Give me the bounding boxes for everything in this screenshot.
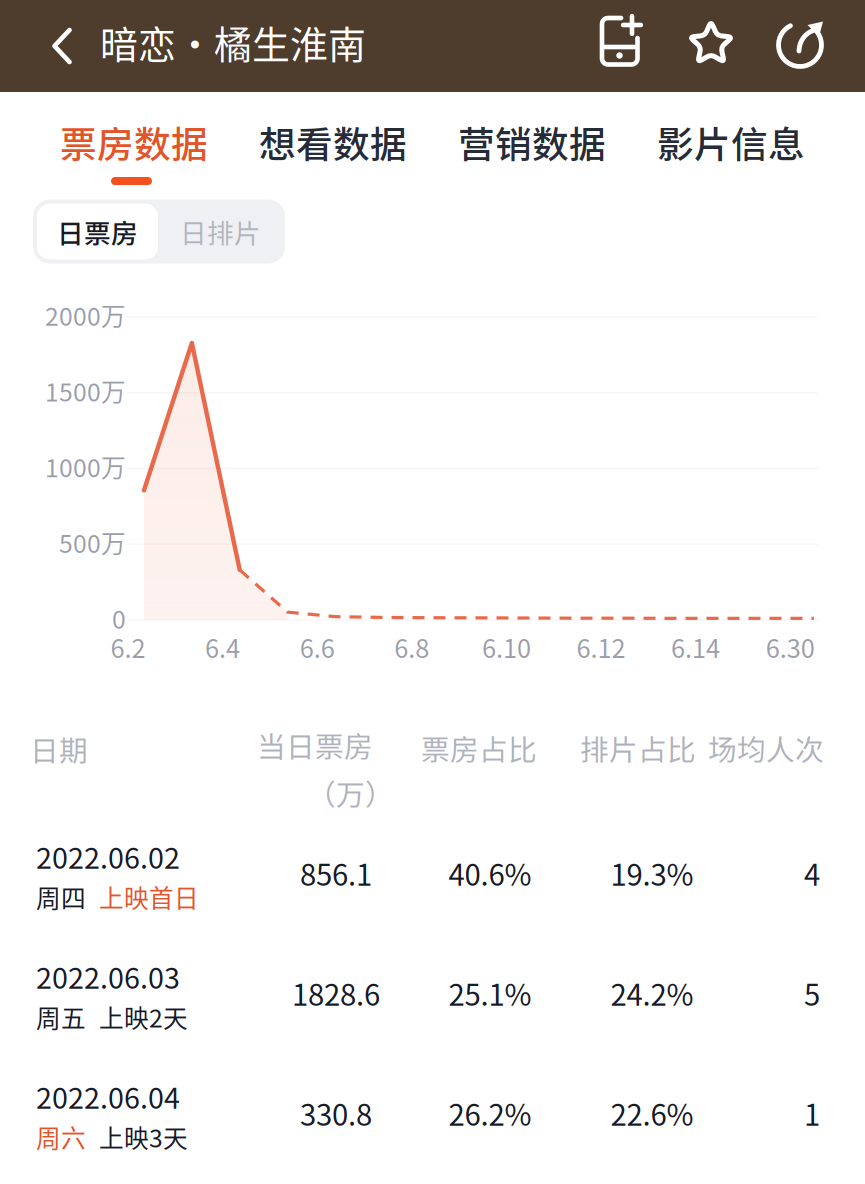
button[interactable]: 分享 <box>763 0 841 88</box>
staticText: 1828.6 <box>292 972 380 1014</box>
staticText: 40.6% <box>448 852 531 894</box>
staticText: 25.1% <box>448 972 531 1014</box>
staticText: 票房占比 <box>421 727 537 769</box>
staticText: 6.8 <box>394 629 429 665</box>
button[interactable]: 收藏 <box>672 0 750 88</box>
staticText: 暗恋·橘生淮南 <box>100 15 366 69</box>
staticText: 6.6 <box>300 629 335 665</box>
staticText: 22.6% <box>610 1092 693 1134</box>
button[interactable]: 加入想看 <box>581 0 659 88</box>
staticText: 2022.06.03 <box>36 955 180 997</box>
staticText: 2022.06.02 <box>36 835 180 877</box>
staticText: 场均人次 <box>708 727 824 769</box>
staticText: 6.2 <box>110 629 145 665</box>
button[interactable]: 日票房 <box>37 203 158 259</box>
staticText: 1000万 <box>45 449 126 484</box>
button[interactable]: 日排片 <box>160 203 281 259</box>
staticText: 2022.06.04 <box>36 1075 180 1117</box>
staticText: 4 <box>804 852 820 894</box>
staticText: 2000万 <box>45 297 126 333</box>
button[interactable]: 影片信息 <box>632 110 830 194</box>
staticText: 19.3% <box>610 852 693 894</box>
staticText: 1 <box>804 1092 820 1134</box>
staticText: 日排片 <box>180 212 261 251</box>
staticText: 当日票房 <box>257 724 373 766</box>
staticText: 6.12 <box>576 629 625 665</box>
button[interactable]: 营销数据 <box>433 110 631 194</box>
staticText: 排片占比 <box>580 727 696 769</box>
staticText: 856.1 <box>300 852 372 894</box>
staticText: 周五 <box>36 999 86 1035</box>
staticText: 6.10 <box>482 629 531 665</box>
staticText: 营销数据 <box>458 115 606 169</box>
staticText: 1500万 <box>45 373 126 409</box>
staticText: 6.30 <box>766 629 815 665</box>
staticText: 6.14 <box>671 629 720 665</box>
staticText: 5 <box>804 972 820 1014</box>
staticText: 330.8 <box>300 1092 372 1134</box>
button[interactable]: 想看数据 <box>234 110 432 194</box>
staticText: 日期 <box>30 728 88 770</box>
staticText: 500万 <box>59 524 126 560</box>
staticText: 票房数据 <box>60 115 208 169</box>
staticText: 日票房 <box>57 212 138 251</box>
staticText: 上映3天 <box>99 1119 188 1155</box>
staticText: 26.2% <box>448 1092 531 1134</box>
staticText: 0 <box>112 600 126 636</box>
staticText: 周六 <box>36 1119 86 1155</box>
staticText: 周四 <box>36 879 86 915</box>
staticText: 上映2天 <box>99 999 188 1035</box>
staticText: 想看数据 <box>259 115 407 169</box>
button[interactable]: 返回 <box>19 0 105 92</box>
staticText: 影片信息 <box>657 115 805 169</box>
staticText: （万） <box>307 772 394 814</box>
staticText: 24.2% <box>610 972 693 1014</box>
button[interactable]: 票房数据 <box>35 110 233 194</box>
staticText: 上映首日 <box>99 879 199 915</box>
staticText: 6.4 <box>205 629 240 665</box>
